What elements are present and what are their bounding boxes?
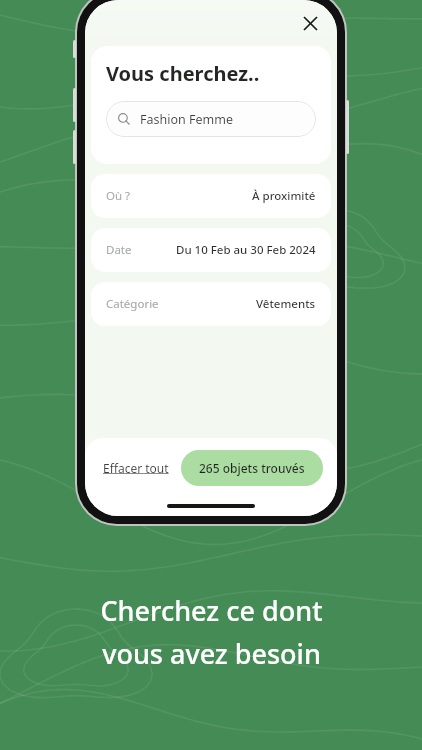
button[interactable]: Où ?: [91, 174, 331, 218]
button[interactable]: Fermer: [295, 8, 325, 38]
button[interactable]: Catégorie: [91, 282, 331, 326]
staticText: Cherchez ce dont: [100, 592, 323, 629]
staticText: vous avez besoin: [102, 635, 321, 672]
staticText: 265 objets trouvés: [199, 460, 305, 476]
button[interactable]: Date: [91, 228, 331, 272]
button[interactable]: Fashion Femme: [106, 101, 316, 137]
staticText: Date: [106, 242, 132, 258]
staticText: Où ?: [106, 188, 131, 204]
staticText: Vous cherchez..: [106, 60, 260, 87]
staticText: Fashion Femme: [140, 111, 233, 128]
staticText: À proximité: [252, 188, 316, 204]
staticText: Du 10 Feb au 30 Feb 2024: [176, 242, 316, 258]
staticText: Effacer tout: [103, 460, 169, 476]
button[interactable]: 265 objets trouvés: [181, 450, 323, 486]
staticText: Vêtements: [256, 296, 316, 312]
staticText: Catégorie: [106, 296, 159, 312]
button[interactable]: Effacer tout: [101, 452, 171, 484]
